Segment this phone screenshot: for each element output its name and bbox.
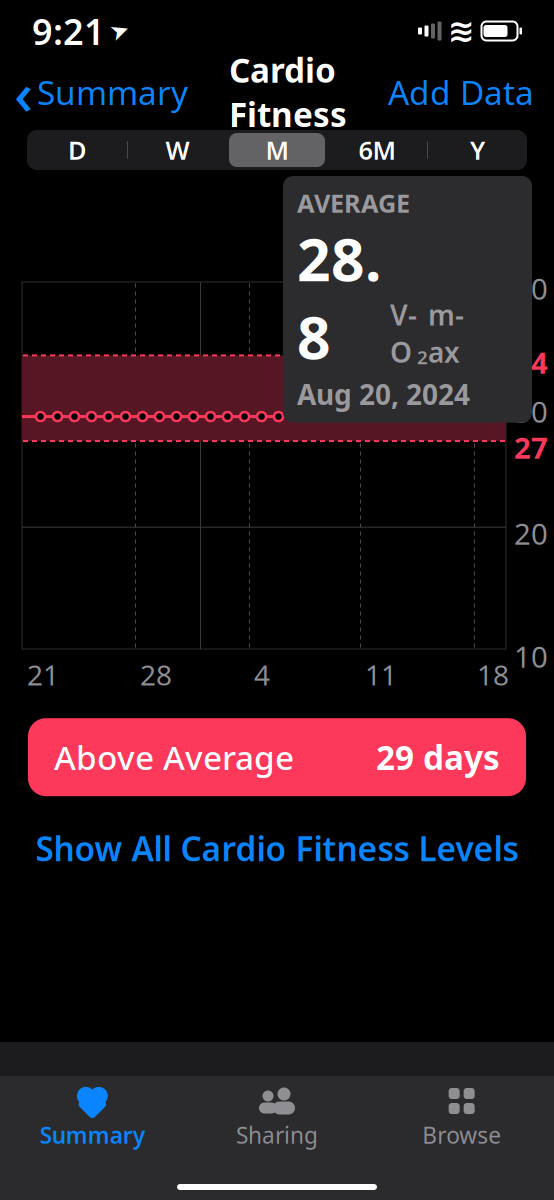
staticText: 10 <box>514 637 548 676</box>
button[interactable]: Cardio Fitness <box>32 1144 522 1200</box>
staticText: 30 <box>514 392 548 431</box>
staticText: Y <box>470 133 485 167</box>
button[interactable]: Sharing <box>185 1076 369 1156</box>
staticText: 28.8 <box>297 220 381 375</box>
staticText: VO <box>390 296 417 370</box>
staticText: M <box>265 133 289 167</box>
button[interactable]: Y <box>427 130 527 170</box>
button[interactable]: 6M <box>327 130 427 170</box>
staticText: 4 <box>254 656 270 693</box>
staticText: 21 <box>27 656 59 693</box>
staticText: Summary <box>40 1120 145 1150</box>
staticText: 40 <box>514 269 548 308</box>
staticText: Add Data <box>388 70 534 114</box>
staticText: 29 days <box>376 735 500 779</box>
staticText: 2 <box>417 345 428 369</box>
staticText: Summary <box>37 70 188 114</box>
staticText: W <box>165 133 189 167</box>
button[interactable]: Above Average <box>28 718 526 796</box>
staticText: Browse <box>422 1120 501 1150</box>
staticText: 20 <box>514 514 548 553</box>
staticText: Trends <box>32 1066 191 1130</box>
staticText: 18 <box>477 656 509 693</box>
staticText: 28 <box>140 656 172 693</box>
staticText: ‹ <box>14 53 33 131</box>
staticText: D <box>68 133 87 167</box>
staticText: 6M <box>358 133 396 167</box>
button[interactable]: D <box>27 130 127 170</box>
button[interactable]: M <box>227 130 327 170</box>
staticText: Aug 20, 2024 <box>297 375 470 413</box>
staticText: AVERAGE <box>297 186 410 220</box>
staticText: 34 <box>514 343 548 382</box>
staticText: Cardio Fitness <box>92 1162 345 1200</box>
button[interactable]: Add Data <box>388 66 554 118</box>
staticText: Cardio Fitness <box>229 48 347 136</box>
button[interactable]: Browse <box>369 1076 554 1156</box>
staticText: 27 <box>514 428 548 467</box>
staticText: Sharing <box>236 1120 318 1150</box>
staticText: ➤ <box>110 18 129 44</box>
staticText: ≋ <box>448 13 475 49</box>
staticText: 9:21 <box>32 7 105 55</box>
staticText: max <box>428 259 464 370</box>
button[interactable]: Summary <box>0 1076 185 1156</box>
button[interactable]: W <box>127 130 227 170</box>
button[interactable]: Show All Cardio Fitness Levels <box>0 818 554 878</box>
staticText: Show All Cardio Fitness Levels <box>35 826 518 870</box>
staticText: Above Average <box>54 735 294 779</box>
button[interactable]: ‹ <box>0 66 188 118</box>
staticText: 11 <box>365 656 397 693</box>
